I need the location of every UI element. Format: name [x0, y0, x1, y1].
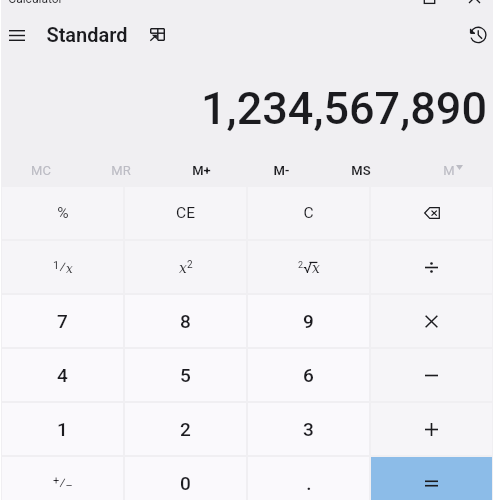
button[interactable]: History — [456, 15, 494, 55]
button[interactable]: 4 — [2, 349, 123, 401]
button[interactable]: 7 — [2, 295, 123, 347]
other: Plus — [425, 423, 438, 436]
staticText: 0 — [180, 472, 191, 494]
button[interactable]: C — [248, 187, 369, 239]
button[interactable]: Minus — [371, 349, 492, 401]
staticText: 6 — [303, 364, 314, 386]
button[interactable]: Divide — [371, 241, 492, 293]
staticText: M — [443, 163, 455, 178]
button[interactable]: Keep on top — [142, 19, 172, 51]
staticText: 4 — [57, 364, 68, 386]
button[interactable]: M- — [241, 154, 321, 186]
staticText: MS — [351, 163, 371, 178]
button[interactable]: Close — [452, 0, 497, 11]
staticText: 9 — [303, 310, 314, 332]
button[interactable]: 2√x — [248, 241, 369, 293]
button[interactable]: MS — [321, 154, 401, 186]
staticText: % — [57, 204, 69, 222]
button[interactable]: Backspace — [371, 187, 492, 239]
other: Multiply — [425, 315, 438, 328]
button[interactable]: x2 — [125, 241, 246, 293]
button[interactable]: 5 — [125, 349, 246, 401]
button[interactable]: Equals — [371, 457, 492, 500]
other: Backspace — [424, 207, 440, 219]
staticText: 7 — [57, 310, 68, 332]
button[interactable]: Plus — [371, 403, 492, 455]
button[interactable]: 3 — [248, 403, 369, 455]
button[interactable]: MC — [1, 154, 81, 186]
other: Minus — [425, 369, 438, 382]
staticText: Standard — [46, 23, 128, 46]
button[interactable]: % — [2, 187, 123, 239]
button[interactable]: 2 — [125, 403, 246, 455]
staticText: C — [303, 204, 314, 222]
staticText: MC — [31, 163, 51, 178]
staticText: x2 — [179, 259, 193, 276]
button[interactable]: 8 — [125, 295, 246, 347]
staticText: 8 — [180, 310, 191, 332]
staticText: +⁄– — [53, 474, 73, 492]
staticText: 2 — [180, 418, 191, 440]
staticText: 1 — [57, 418, 68, 440]
button[interactable]: 6 — [248, 349, 369, 401]
staticText: 1,234,567,890 — [201, 82, 487, 135]
button[interactable]: Multiply — [371, 295, 492, 347]
button[interactable]: 9 — [248, 295, 369, 347]
button[interactable]: . — [248, 457, 369, 500]
staticText: MR — [111, 163, 131, 178]
button[interactable]: Maximize — [407, 0, 453, 11]
staticText: 2√x — [298, 259, 320, 275]
button[interactable]: 1 — [2, 403, 123, 455]
staticText: M- — [273, 163, 290, 178]
button[interactable]: Memory list — [401, 154, 493, 186]
other: Equals — [425, 477, 438, 490]
button[interactable]: CE — [125, 187, 246, 239]
staticText: 5 — [180, 364, 191, 386]
staticText: M+ — [192, 163, 211, 178]
staticText: 3 — [303, 418, 314, 440]
button[interactable]: 0 — [125, 457, 246, 500]
staticText: . — [306, 472, 312, 494]
staticText: Calculator — [8, 0, 63, 3]
button[interactable]: MR — [81, 154, 161, 186]
other: Divide — [425, 261, 438, 274]
staticText: 1⁄x — [53, 258, 73, 276]
staticText: CE — [176, 204, 195, 222]
button[interactable]: 1⁄x — [2, 241, 123, 293]
button[interactable]: Navigation menu — [1, 15, 33, 55]
button[interactable]: M+ — [161, 154, 241, 186]
button[interactable]: +⁄– — [2, 457, 123, 500]
